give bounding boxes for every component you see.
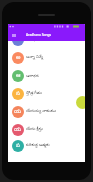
button[interactable]: Play — [76, 96, 85, 109]
staticText: అ — [16, 54, 21, 62]
button[interactable]: ప — [8, 139, 85, 153]
staticText: Aradhana Songs — [26, 33, 51, 37]
button[interactable]: య — [8, 121, 85, 139]
staticText: ప — [16, 142, 20, 150]
staticText: ఆరాధన — [26, 37, 39, 42]
staticText: యేసయ్య నామము — [26, 108, 57, 114]
button[interactable]: య — [8, 103, 85, 121]
staticText: అన్నా నిన్నే — [26, 54, 44, 60]
button[interactable]: అ — [8, 49, 85, 67]
button[interactable]: స — [8, 85, 85, 103]
staticText: యేసు క్రీస్తు — [26, 126, 43, 132]
staticText: స — [16, 90, 20, 98]
staticText: ఆ — [16, 36, 21, 44]
staticText: య — [14, 108, 22, 116]
staticText: య — [14, 126, 22, 134]
staticText: స్తోత్ర గీతం — [26, 90, 42, 96]
staticText: ఆరాధన — [26, 73, 39, 78]
button[interactable]: ఆ — [8, 67, 85, 85]
button[interactable]: ఆ — [8, 31, 85, 49]
button[interactable]: Open navigation menu — [11, 32, 17, 38]
staticText: పరిశుద్ధ ఆత్మకు — [26, 142, 50, 148]
staticText: ఆ — [16, 72, 21, 80]
